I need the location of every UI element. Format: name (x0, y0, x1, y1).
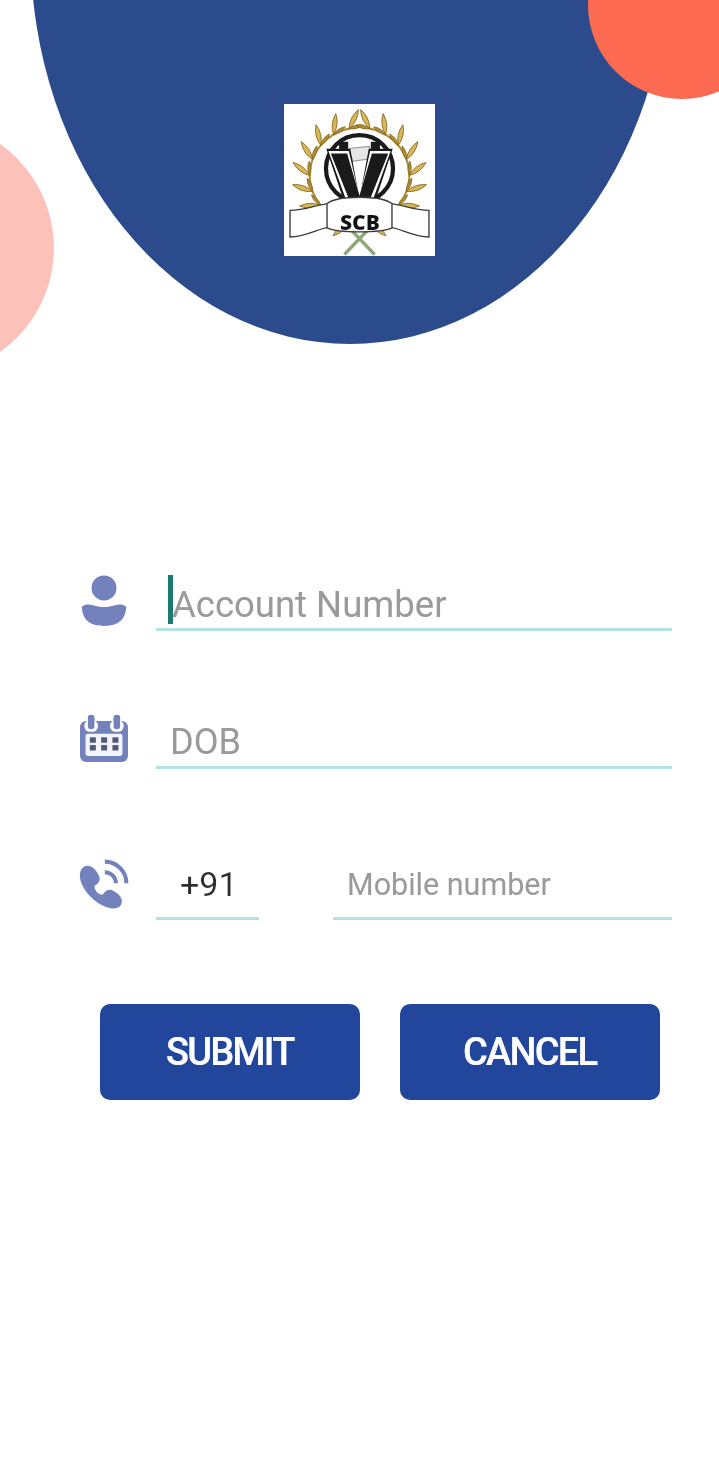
button[interactable]: SUBMIT (100, 1004, 360, 1100)
button[interactable]: DOB (156, 710, 672, 769)
staticText: SUBMIT (166, 1030, 294, 1075)
button[interactable]: Date of birth (80, 715, 128, 762)
staticText: CANCEL (463, 1030, 597, 1075)
staticText: DOB (170, 721, 241, 763)
button[interactable]: Account (79, 572, 129, 626)
staticText: SCB (340, 208, 380, 237)
button[interactable]: Mobile (77, 856, 131, 911)
staticText: Account Number (172, 583, 447, 626)
staticText: Mobile number (347, 867, 551, 903)
button[interactable]: Account Number (156, 572, 672, 631)
button[interactable]: +91 (156, 861, 259, 920)
button[interactable]: Mobile number (333, 861, 672, 920)
staticText: +91 (180, 864, 238, 904)
button[interactable]: CANCEL (400, 1004, 660, 1100)
